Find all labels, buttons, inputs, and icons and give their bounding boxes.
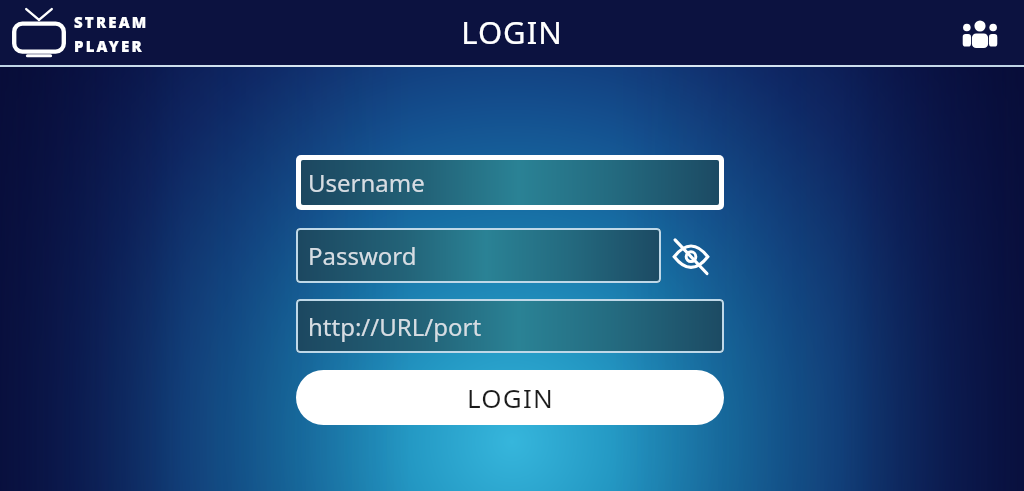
staticText: http://URL/port [308,310,482,343]
staticText: PLAYER [74,36,144,56]
button[interactable]: LOGIN [296,370,724,425]
button[interactable]: Show password [664,228,718,283]
staticText: LOGIN [467,380,554,415]
button[interactable]: STREAM [10,8,149,60]
staticText: Password [308,239,417,272]
button[interactable]: Users [958,12,1002,56]
button[interactable]: Password [296,228,661,283]
button[interactable]: http://URL/port [296,299,724,353]
staticText: Username [308,166,425,199]
staticText: LOGIN [461,11,563,53]
button[interactable]: Username [301,160,719,205]
staticText: STREAM [74,12,149,32]
